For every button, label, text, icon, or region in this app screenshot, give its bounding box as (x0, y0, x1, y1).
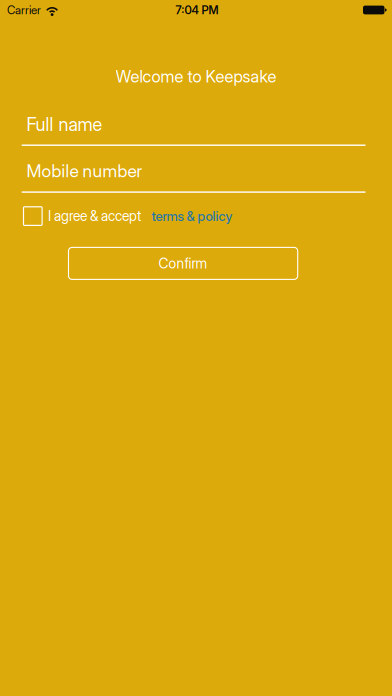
staticText: Confirm (159, 255, 208, 272)
button[interactable]: Confirm (68, 247, 298, 279)
staticText: I agree & accept (48, 208, 141, 224)
staticText: Carrier (7, 3, 41, 17)
staticText: 7:04 PM (175, 3, 218, 17)
staticText: Full name (26, 113, 102, 135)
staticText: Mobile number (26, 160, 142, 181)
staticText: Welcome to Keepsake (115, 66, 276, 87)
staticText: terms & policy (151, 208, 232, 224)
button[interactable]: I agree & accept (0, 207, 392, 225)
